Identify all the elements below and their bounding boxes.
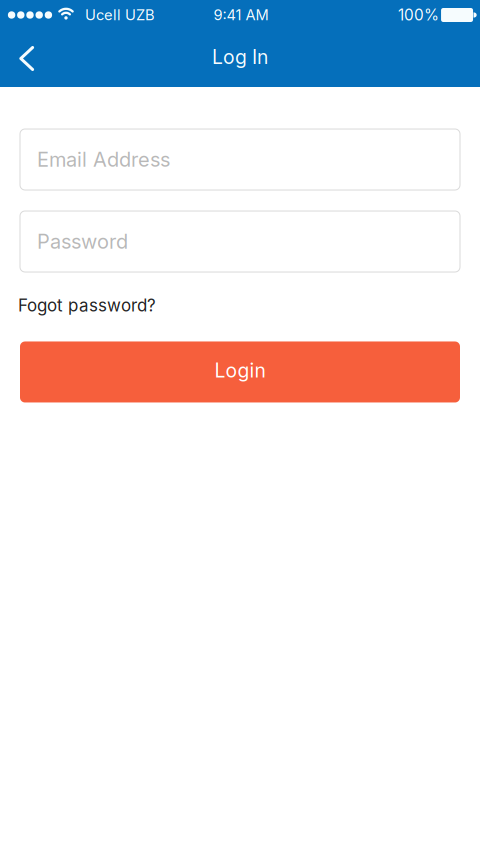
staticText: Log In <box>212 45 268 69</box>
staticText: 9:41 AM <box>213 6 268 24</box>
staticText: Password <box>37 229 128 254</box>
button[interactable]: Email Address <box>20 129 460 190</box>
staticText: Login <box>214 359 265 382</box>
button[interactable]: Login <box>20 341 460 402</box>
staticText: Fogot password? <box>18 295 156 315</box>
staticText: 100% <box>398 6 439 24</box>
button[interactable]: Fogot password? <box>18 293 156 317</box>
button[interactable]: Back <box>0 32 54 85</box>
staticText: Ucell UZB <box>85 6 155 24</box>
button[interactable]: Password <box>20 211 460 272</box>
staticText: Email Address <box>37 147 170 172</box>
